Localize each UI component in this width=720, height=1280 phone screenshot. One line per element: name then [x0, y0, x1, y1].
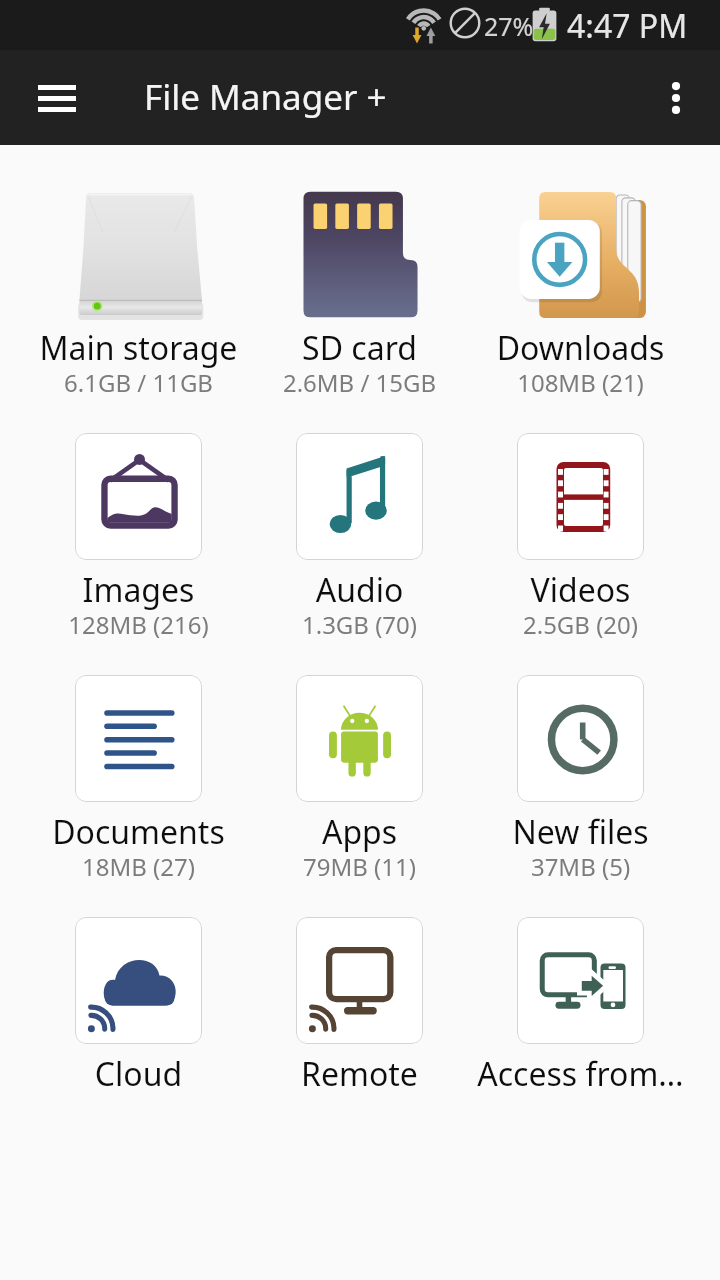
button[interactable]: New files	[470, 629, 691, 871]
button[interactable]: SD card	[249, 145, 470, 387]
staticText: SD card	[251, 326, 468, 370]
button[interactable]: Documents	[28, 629, 249, 871]
button[interactable]: Main storage	[28, 145, 249, 387]
button[interactable]: Downloads	[470, 145, 691, 387]
button[interactable]: Videos	[470, 387, 691, 629]
button[interactable]: Open navigation drawer	[17, 53, 97, 143]
staticText: 27%	[484, 9, 534, 43]
staticText: 128MB (216)	[28, 608, 249, 641]
button[interactable]: More options	[648, 53, 704, 143]
staticText: 18MB (27)	[28, 850, 249, 883]
staticText: 6.1GB / 11GB	[28, 366, 249, 399]
staticText: 2.6MB / 15GB	[249, 366, 470, 399]
button[interactable]: Audio	[249, 387, 470, 629]
staticText: 37MB (5)	[470, 850, 691, 883]
staticText: Documents	[30, 810, 247, 854]
staticText: Main storage	[30, 326, 247, 370]
staticText: Cloud	[30, 1052, 247, 1096]
button[interactable]: Remote	[249, 871, 470, 1113]
staticText: Videos	[472, 568, 689, 612]
staticText: 4:47 PM	[567, 4, 688, 48]
staticText: Apps	[251, 810, 468, 854]
staticText: New files	[472, 810, 689, 854]
staticText: 79MB (11)	[249, 850, 470, 883]
button[interactable]: Cloud	[28, 871, 249, 1113]
staticText: Access from…	[472, 1052, 689, 1096]
button[interactable]: Images	[28, 387, 249, 629]
staticText: Images	[30, 568, 247, 612]
staticText: Remote	[251, 1052, 468, 1096]
staticText: 108MB (21)	[470, 366, 691, 399]
staticText: Downloads	[472, 326, 689, 370]
staticText: File Manager +	[144, 73, 387, 121]
staticText: Audio	[251, 568, 468, 612]
button[interactable]: Apps	[249, 629, 470, 871]
button[interactable]: Access from…	[470, 871, 691, 1113]
staticText: 1.3GB (70)	[249, 608, 470, 641]
staticText: 2.5GB (20)	[470, 608, 691, 641]
